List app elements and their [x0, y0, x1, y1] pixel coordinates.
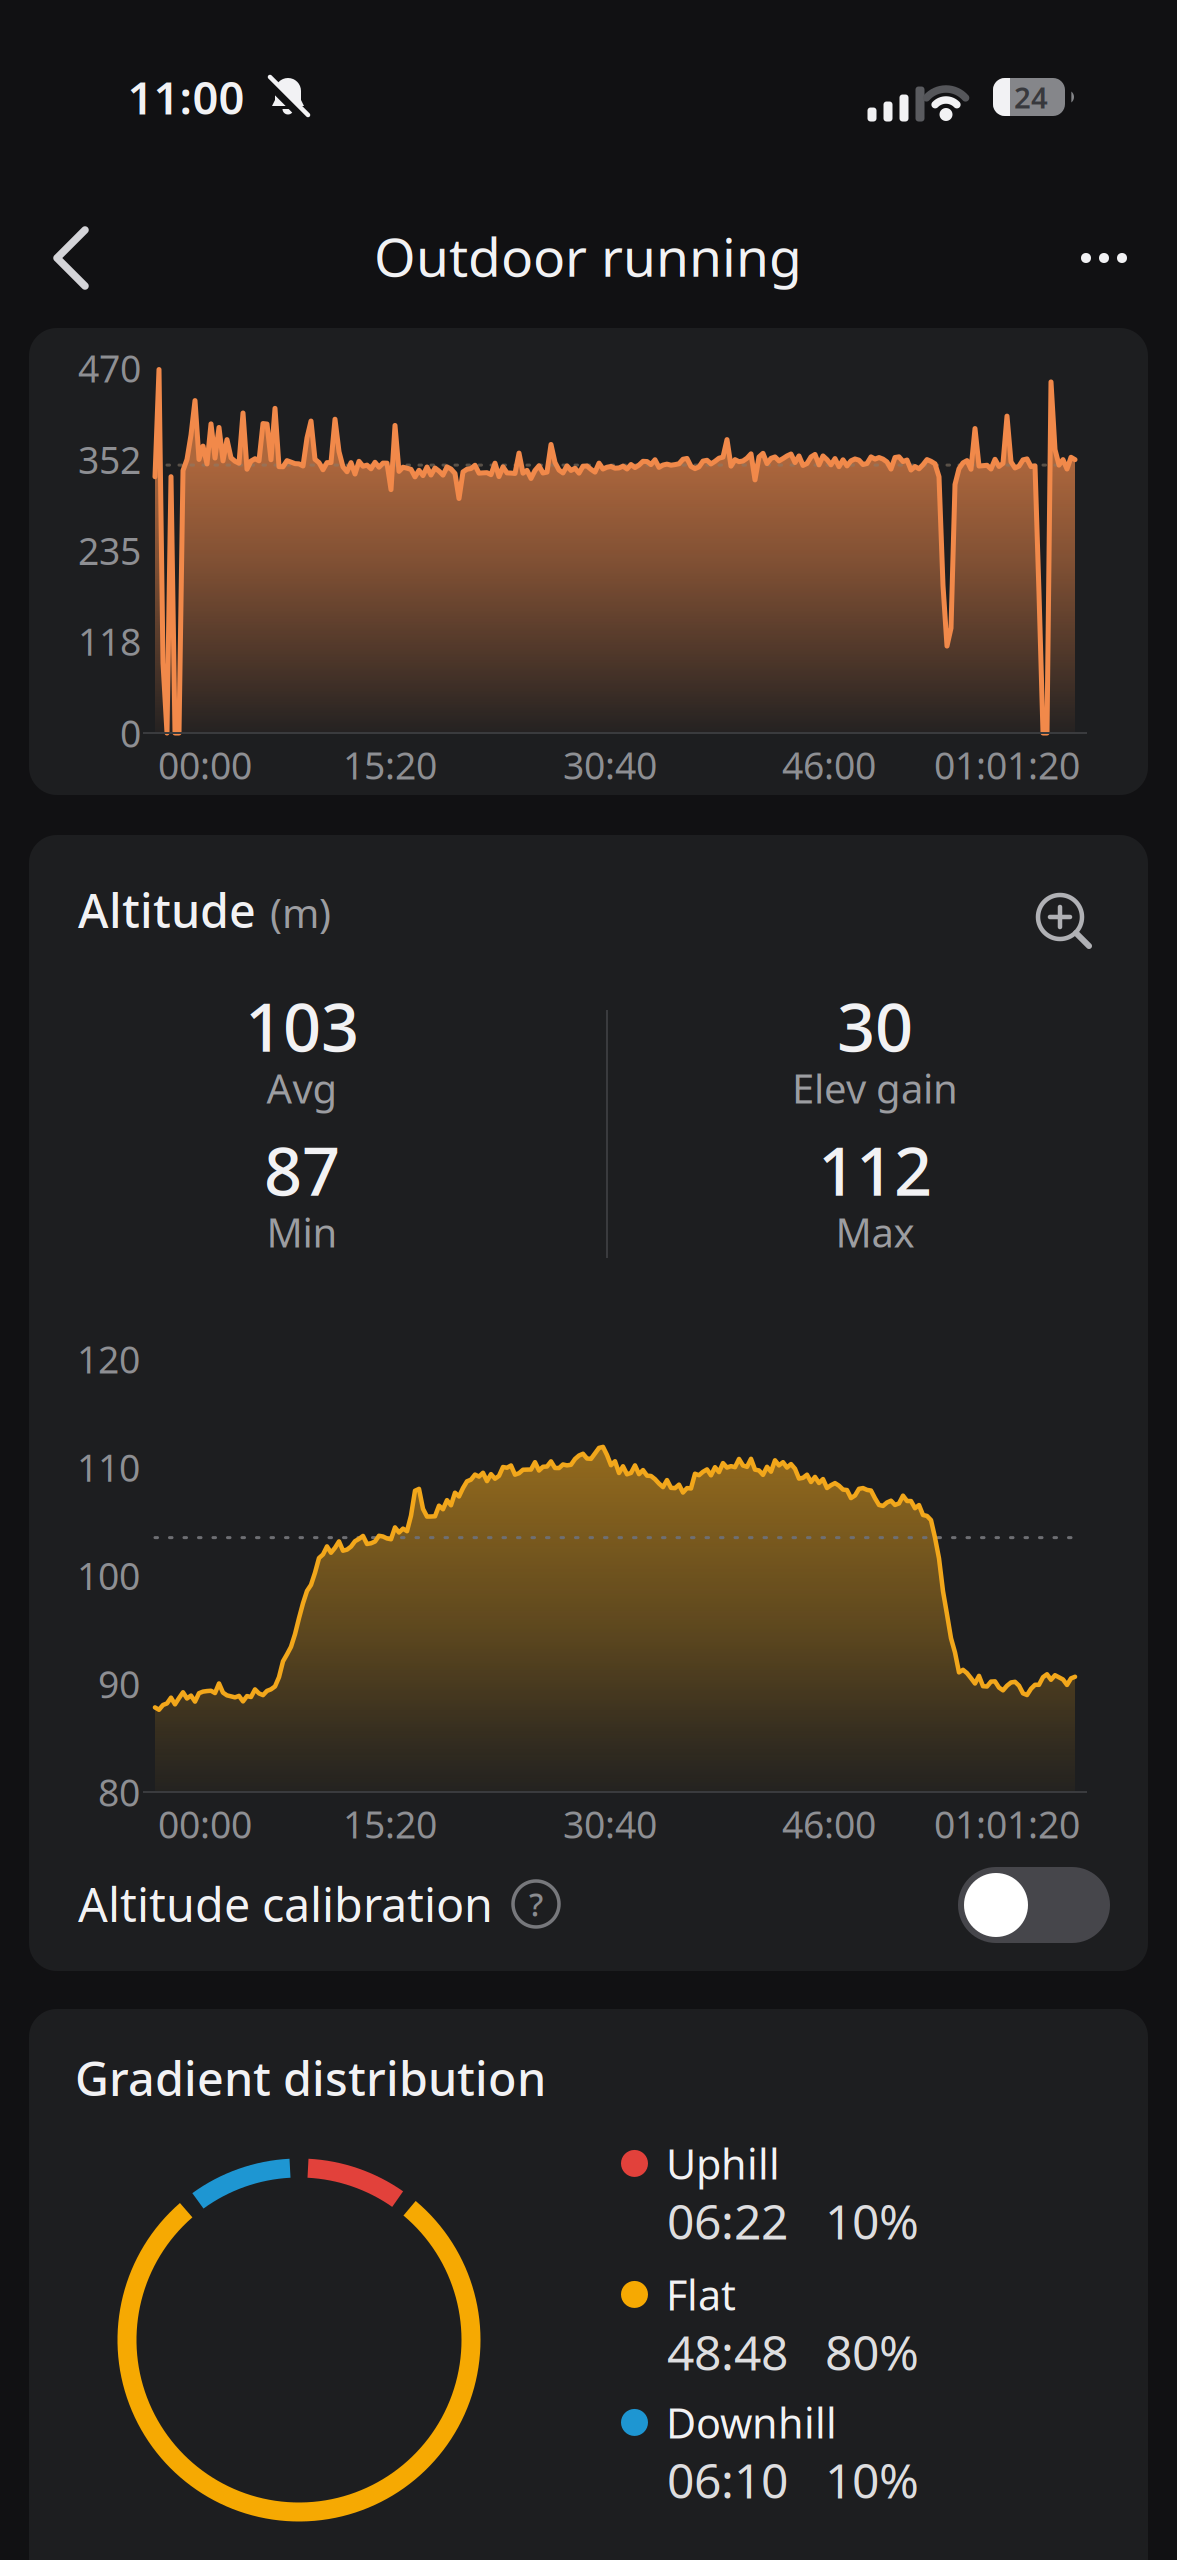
staticText: Avg: [266, 1061, 337, 1114]
staticText: Gradient distribution: [75, 2047, 546, 2109]
button[interactable]: Altitude calibration: [958, 1867, 1110, 1943]
staticText: 30:40: [563, 740, 657, 790]
staticText: Flat: [666, 2267, 736, 2322]
staticText: 00:00: [158, 740, 252, 790]
staticText: Altitude: [78, 879, 256, 941]
staticText: 112: [818, 1126, 932, 1214]
staticText: 80%: [825, 2320, 919, 2384]
staticText: (m): [270, 886, 331, 939]
staticText: 80: [98, 1767, 140, 1817]
staticText: 06:10: [667, 2448, 788, 2512]
staticText: Outdoor running: [374, 221, 802, 291]
staticText: 46:00: [782, 1799, 876, 1849]
staticText: ?: [529, 1883, 543, 1925]
staticText: 0: [120, 708, 141, 758]
staticText: 01:01:20: [934, 740, 1080, 790]
staticText: 06:22: [667, 2189, 788, 2253]
staticText: 90: [98, 1659, 140, 1709]
staticText: 11:00: [127, 67, 244, 127]
button[interactable]: More: [1077, 223, 1131, 293]
staticText: 120: [77, 1334, 140, 1384]
button[interactable]: Zoom: [1031, 888, 1101, 958]
staticText: 15:20: [343, 1799, 437, 1849]
staticText: 01:01:20: [934, 1799, 1080, 1849]
staticText: 15:20: [343, 740, 437, 790]
staticText: Min: [266, 1205, 337, 1258]
staticText: 10%: [825, 2189, 919, 2253]
staticText: Downhill: [666, 2395, 837, 2450]
staticText: Altitude calibration: [78, 1873, 493, 1935]
staticText: 352: [78, 435, 141, 484]
staticText: 100: [77, 1551, 140, 1600]
staticText: 10%: [825, 2448, 919, 2512]
staticText: 00:00: [158, 1799, 252, 1849]
staticText: 470: [78, 343, 141, 393]
button[interactable]: Help: [511, 1879, 561, 1929]
staticText: 118: [78, 617, 141, 666]
staticText: 110: [77, 1442, 140, 1492]
button[interactable]: Back: [47, 223, 95, 293]
staticText: 235: [78, 526, 141, 575]
staticText: 46:00: [782, 740, 876, 790]
staticText: Uphill: [666, 2136, 780, 2191]
staticText: Max: [835, 1205, 914, 1258]
staticText: Elev gain: [792, 1061, 958, 1114]
staticText: 30:40: [563, 1799, 657, 1849]
staticText: 87: [264, 1126, 340, 1214]
staticText: 48:48: [667, 2320, 788, 2384]
staticText: 24: [1014, 77, 1048, 116]
staticText: 103: [245, 982, 359, 1070]
staticText: 30: [837, 982, 913, 1070]
